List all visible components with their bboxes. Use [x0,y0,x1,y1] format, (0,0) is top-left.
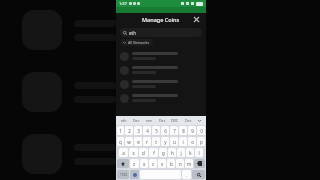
staticText: 9 [191,128,194,134]
staticText: x [143,161,146,167]
button[interactable]: g [159,148,167,157]
button[interactable]: 3 [134,126,142,135]
button[interactable]: Dec [184,118,193,123]
button[interactable]: 6 [161,126,169,135]
staticText: Manage Coins [142,16,180,23]
staticText: Dec [159,118,166,123]
button[interactable]: a [119,148,128,157]
staticText: k [189,150,192,156]
button[interactable]: o [188,137,196,146]
button[interactable]: m [185,159,193,168]
staticText: l [198,150,200,156]
button[interactable] [116,77,206,91]
staticText: c [152,161,155,167]
staticText: g [162,150,165,156]
button[interactable]: s [129,148,138,157]
button[interactable]: u [170,137,178,146]
staticText: 4 [146,128,149,134]
staticText: e [137,139,140,145]
staticText: m [187,161,192,167]
staticText: 3 [137,128,140,134]
staticText: . [186,172,188,178]
staticText: eth [129,30,136,36]
button[interactable]: z [130,159,139,168]
button[interactable]: y [161,137,169,146]
staticText: w [127,139,131,145]
button[interactable]: h [168,148,176,157]
button[interactable]: 4 [143,126,151,135]
staticText: Dec [133,118,140,123]
button[interactable]: 1 [117,126,124,135]
button[interactable]: 7 [170,126,178,135]
button[interactable]: w [125,137,133,146]
button[interactable]: Dec [132,118,141,123]
button[interactable] [116,49,206,63]
button[interactable]: eee [145,118,154,123]
button[interactable]: j [177,148,185,157]
button[interactable]: eth [120,118,128,123]
button[interactable] [116,91,206,105]
button[interactable]: k [186,148,194,157]
staticText: r [146,139,148,145]
button[interactable]: q [117,137,124,146]
button[interactable]: x [140,159,148,168]
staticText: 8 [182,128,185,134]
staticText: y [164,139,167,145]
button[interactable]: Shift [117,159,129,168]
staticText: i [182,139,184,145]
staticText: ?123 [120,173,127,177]
staticText: d [142,150,145,156]
button[interactable]: . [182,170,191,179]
button[interactable]: 9 [188,126,196,135]
button[interactable] [116,63,206,77]
button[interactable]: n [176,159,184,168]
staticText: 2 [128,128,131,134]
staticText: 1 [119,128,122,134]
button[interactable]: All Networks [120,39,153,46]
staticText: eth [121,118,127,123]
button[interactable]: Dec [158,118,167,123]
staticText: All Networks [128,40,150,45]
staticText: t [155,139,157,145]
button[interactable]: t [152,137,160,146]
staticText: 7 [173,128,176,134]
button[interactable]: 8 [179,126,187,135]
staticText: v [161,161,164,167]
staticText: j [180,150,182,156]
button[interactable]: v [158,159,166,168]
staticText: s [132,150,135,156]
staticText: h [171,150,174,156]
button[interactable]: More [197,118,202,123]
button[interactable]: e [134,137,142,146]
button[interactable]: Backspace [194,159,205,168]
button[interactable]: c [149,159,157,168]
button[interactable]: r [143,137,151,146]
button[interactable]: DRC [170,118,180,123]
button[interactable]: Search [192,170,205,179]
button[interactable]: Close [192,15,201,24]
button[interactable]: f [149,148,158,157]
button[interactable]: l [195,148,203,157]
staticText: a [122,150,125,156]
button[interactable]: ?123 [117,170,129,179]
staticText: u [173,139,176,145]
button[interactable]: p [197,137,205,146]
staticText: 6 [164,128,167,134]
button[interactable]: d [139,148,148,157]
button[interactable]: 0 [197,126,205,135]
button[interactable]: Emoji [130,170,139,179]
button[interactable]: 5 [152,126,160,135]
staticText: o [191,139,194,145]
button[interactable]: eth [120,28,202,37]
button[interactable]: b [167,159,175,168]
button[interactable]: 2 [125,126,133,135]
staticText: b [170,161,173,167]
staticText: eee [146,118,153,123]
staticText: 1:37 [119,1,127,6]
staticText: Dec [185,118,192,123]
staticText: q [119,139,122,145]
staticText: 0 [200,128,203,134]
button[interactable]: i [179,137,187,146]
staticText: f [153,150,155,156]
